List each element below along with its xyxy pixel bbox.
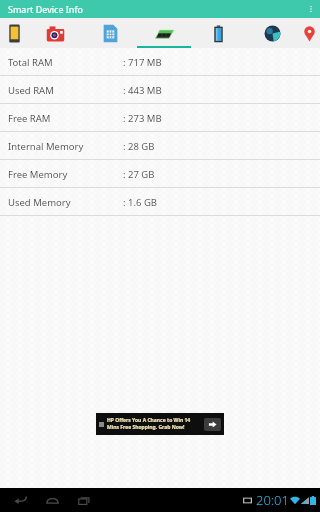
- staticText: Used RAM: [8, 84, 54, 97]
- button[interactable]: Free RAM: [0, 104, 320, 132]
- button[interactable]: Camera info: [28, 18, 83, 48]
- button[interactable]: Device info: [0, 18, 28, 48]
- button[interactable]: Recent apps: [72, 488, 96, 512]
- button[interactable]: Internal Memory: [0, 132, 320, 160]
- button[interactable]: Back: [8, 488, 32, 512]
- staticText: Free Memory: [8, 168, 68, 181]
- staticText: Used Memory: [8, 196, 71, 209]
- button[interactable]: Battery info: [191, 18, 245, 48]
- staticText: : 28 GB: [123, 140, 155, 153]
- button[interactable]: Free Memory: [0, 160, 320, 188]
- staticText: : 273 MB: [123, 112, 162, 125]
- button[interactable]: Location info: [299, 18, 320, 48]
- staticText: : 1.6 GB: [123, 196, 157, 209]
- staticText: 20:01: [256, 491, 289, 509]
- button[interactable]: Used RAM: [0, 76, 320, 104]
- staticText: Internal Memory: [8, 140, 84, 153]
- staticText: Total RAM: [8, 56, 53, 69]
- button[interactable]: Home: [40, 488, 64, 512]
- staticText: : 27 GB: [123, 168, 155, 181]
- staticText: : 717 MB: [123, 56, 162, 69]
- button[interactable]: Network info: [245, 18, 299, 48]
- button[interactable]: HP Offers You A Chance to Win 14: [96, 413, 224, 435]
- button[interactable]: Used Memory: [0, 188, 320, 216]
- button[interactable]: Total RAM: [0, 48, 320, 76]
- staticText: Smart Device Info: [8, 3, 83, 15]
- staticText: Mins Free Shopping. Grab Now!: [107, 424, 185, 431]
- staticText: HP Offers You A Chance to Win 14: [107, 417, 191, 424]
- staticText: : 443 MB: [123, 84, 162, 97]
- button[interactable]: Memory info: [137, 18, 191, 48]
- button[interactable]: SIM info: [83, 18, 137, 48]
- staticText: Free RAM: [8, 112, 51, 125]
- button[interactable]: More options: [302, 0, 320, 18]
